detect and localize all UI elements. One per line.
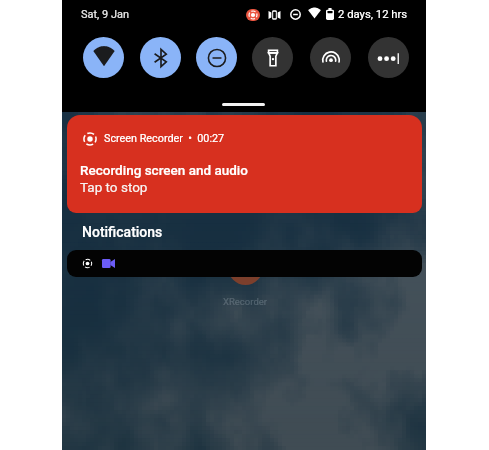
button[interactable]: More settings: [368, 37, 409, 78]
button[interactable]: Wi-Fi: [83, 37, 124, 78]
staticText: Sat, 9 Jan: [81, 8, 130, 21]
staticText: XRecorder: [207, 296, 283, 307]
button[interactable]: Hotspot: [310, 37, 351, 78]
button[interactable]: [67, 250, 422, 277]
staticText: 2 days, 12 hrs: [338, 8, 408, 21]
button[interactable]: Bluetooth: [140, 37, 181, 78]
staticText: Screen Recorder • 00:27: [104, 132, 225, 145]
button[interactable]: Drag handle: [222, 103, 265, 106]
button[interactable]: Screen Recorder • 00:27: [67, 115, 422, 213]
staticText: Tap to stop: [80, 179, 148, 195]
staticText: Notifications: [82, 224, 163, 240]
button[interactable]: Do Not Disturb: [196, 37, 237, 78]
staticText: Recording screen and audio: [80, 162, 248, 178]
button[interactable]: Flashlight: [252, 37, 293, 78]
